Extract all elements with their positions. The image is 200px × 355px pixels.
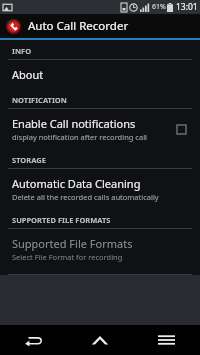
staticText: 61% xyxy=(152,2,166,12)
staticText: Supported File Formats xyxy=(12,236,133,251)
staticText: Automatic Data Cleaning xyxy=(12,176,141,191)
staticText: Auto Call Recorder xyxy=(28,18,129,34)
button[interactable]: Supported File Formats xyxy=(0,229,200,269)
staticText: STORAGE xyxy=(12,155,46,165)
button[interactable]: Automatic Data Cleaning xyxy=(0,169,200,209)
button[interactable]: Enable Call notifications checkbox xyxy=(174,122,188,136)
staticText: Enable Call notifications xyxy=(12,116,136,131)
button[interactable]: Auto Call Recorder app icon xyxy=(6,19,21,34)
staticText: display notification after recording cal… xyxy=(12,132,148,142)
staticText: INFO xyxy=(12,46,32,56)
staticText: SUPPORTED FILE FORMATS xyxy=(12,215,111,225)
button[interactable]: Back xyxy=(0,325,66,355)
button[interactable]: Home xyxy=(66,325,133,355)
button[interactable]: Enable Call notifications xyxy=(0,109,200,149)
staticText: NOTIFICATION xyxy=(12,95,67,105)
staticText: 13:01 xyxy=(176,1,198,13)
staticText: Select File Format for recording xyxy=(12,252,123,262)
staticText: About xyxy=(12,67,44,82)
staticText: Delete all the recorded calls automatica… xyxy=(12,192,159,202)
button[interactable]: About xyxy=(0,60,200,89)
button[interactable]: Menu xyxy=(133,325,200,355)
